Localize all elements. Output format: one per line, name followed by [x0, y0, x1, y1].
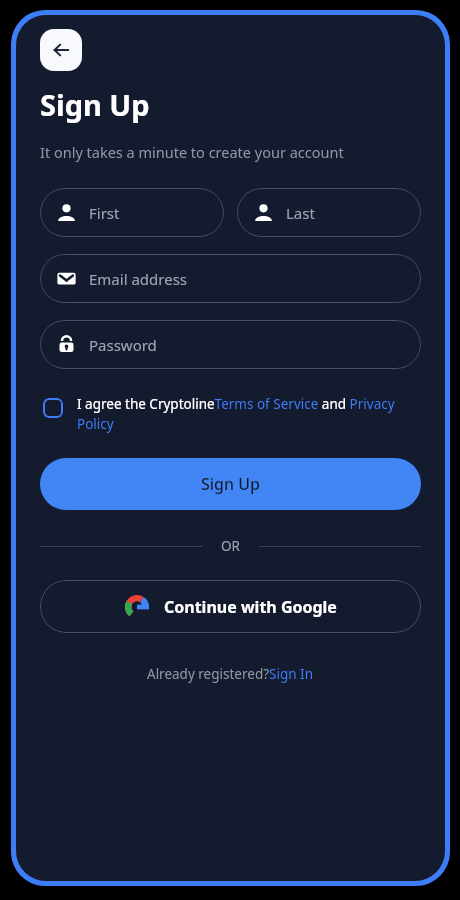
button[interactable]: Sign Up [40, 458, 421, 510]
button[interactable]: Back [40, 29, 82, 71]
staticText: Sign Up [40, 85, 150, 124]
staticText: Sign Up [201, 473, 260, 495]
staticText: Email address [89, 269, 188, 289]
button[interactable]: Password [40, 320, 421, 369]
staticText: Continue with Google [164, 596, 337, 618]
button[interactable]: I agree the CryptolineTerms of Service a… [40, 395, 421, 433]
button[interactable]: Continue with Google [40, 580, 421, 633]
staticText: I agree the CryptolineTerms of Service a… [77, 395, 421, 433]
staticText: Last [286, 203, 315, 223]
staticText: Password [89, 335, 157, 355]
staticText: First [89, 203, 120, 223]
staticText: Already registered?Sign In [147, 665, 314, 683]
button[interactable]: Already registered?Sign In [40, 665, 421, 683]
staticText: OR [221, 537, 240, 555]
button[interactable]: Email address [40, 254, 421, 303]
button[interactable]: First [40, 188, 224, 237]
staticText: It only takes a minute to create your ac… [40, 142, 344, 162]
button[interactable]: Last [237, 188, 421, 237]
